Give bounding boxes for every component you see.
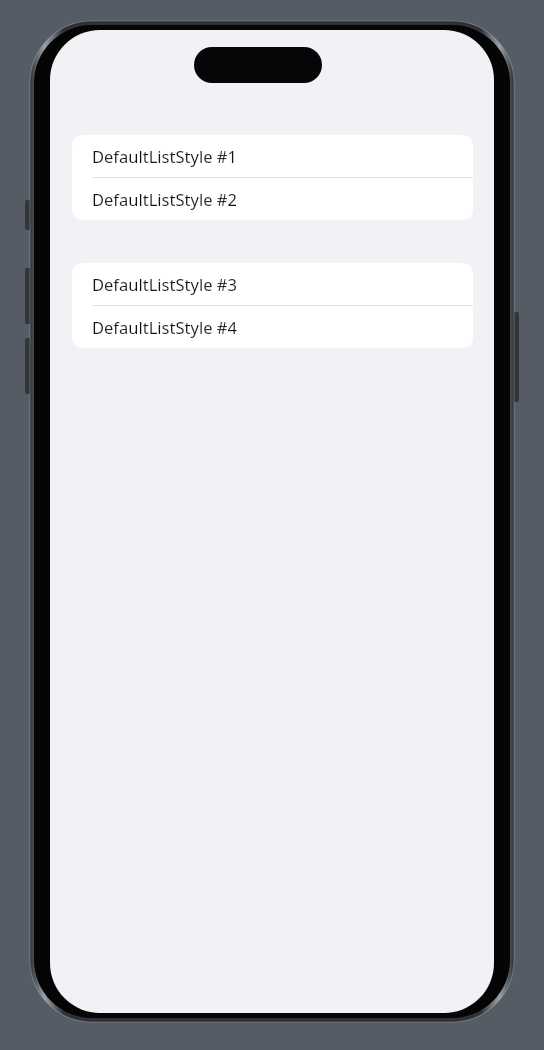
staticText: DefaultListStyle #1 bbox=[92, 145, 237, 167]
staticText: DefaultListStyle #3 bbox=[92, 273, 237, 295]
button[interactable]: DefaultListStyle #4 bbox=[72, 306, 473, 348]
button[interactable]: DefaultListStyle #1 bbox=[72, 135, 473, 178]
staticText: DefaultListStyle #4 bbox=[92, 316, 237, 338]
button[interactable]: DefaultListStyle #3 bbox=[72, 263, 473, 306]
button[interactable]: DefaultListStyle #2 bbox=[72, 178, 473, 220]
staticText: DefaultListStyle #2 bbox=[92, 188, 237, 210]
